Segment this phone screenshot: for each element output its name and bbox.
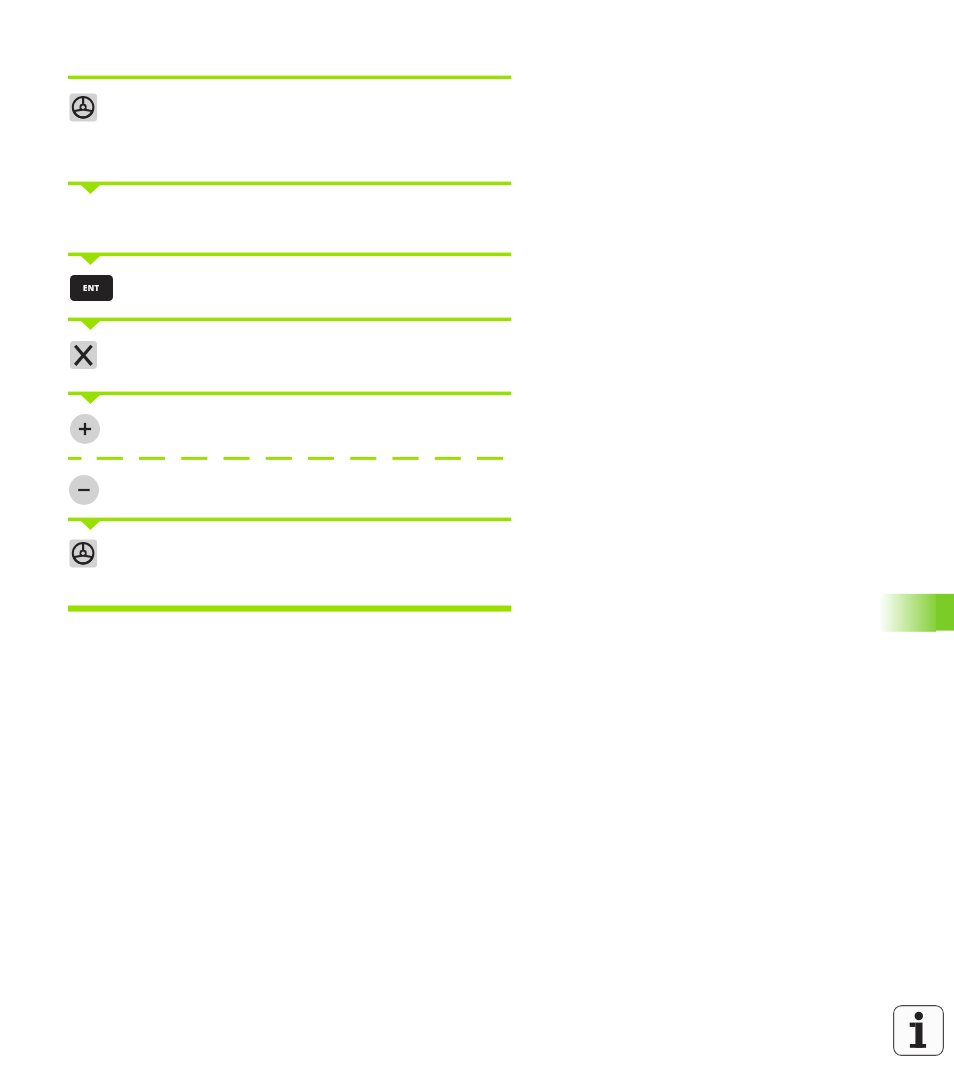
button[interactable]: Info	[893, 1005, 944, 1056]
button[interactable]: Handwheel	[69, 540, 97, 568]
button[interactable]: Increase	[70, 414, 100, 444]
button[interactable]: Handwheel	[69, 94, 97, 122]
button[interactable]: X axis	[70, 341, 97, 369]
staticText: ENT	[83, 283, 100, 294]
button[interactable]: Decrease	[69, 475, 99, 505]
button[interactable]: ENT	[70, 275, 113, 301]
